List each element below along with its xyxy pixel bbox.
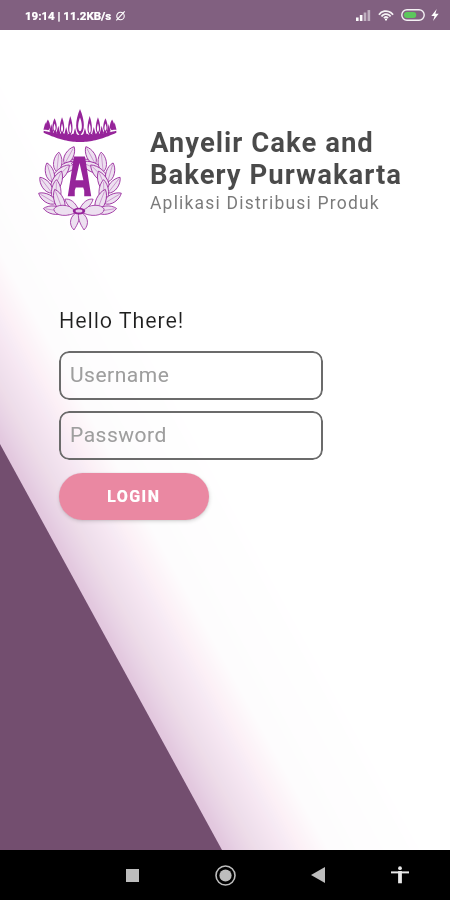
staticText: 19:14 | 11.2KB/s <box>25 9 112 22</box>
button[interactable]: LOGIN <box>59 473 209 520</box>
staticText: Password <box>70 423 167 448</box>
staticText: Username <box>70 363 170 388</box>
button[interactable]: Password <box>59 411 323 460</box>
button[interactable]: Username <box>59 351 323 400</box>
button[interactable]: Home <box>210 860 240 890</box>
button[interactable]: Back <box>303 860 333 890</box>
staticText: Anyelir Cake and <box>150 126 374 158</box>
button[interactable]: Accessibility <box>385 860 415 890</box>
staticText: LOGIN <box>107 487 161 506</box>
staticText: Bakery Purwakarta <box>150 158 403 190</box>
staticText: Aplikasi Distribusi Produk <box>150 193 380 214</box>
staticText: Hello There! <box>59 308 185 333</box>
button[interactable]: Recent apps <box>117 860 147 890</box>
